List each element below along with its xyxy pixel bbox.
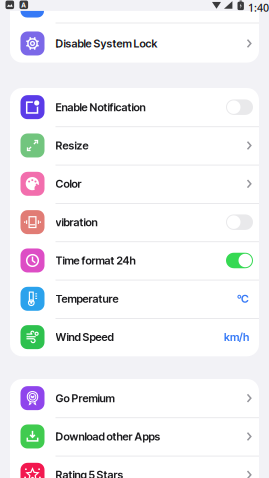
button[interactable]: Download other Apps: [10, 417, 259, 456]
staticText: km/h: [224, 330, 249, 344]
staticText: Download other Apps: [55, 430, 160, 443]
button[interactable]: Disable System Lock: [10, 24, 259, 63]
button[interactable]: vibration: [10, 203, 259, 241]
staticText: Enable Notification: [55, 101, 145, 114]
button[interactable]: Go Premium: [10, 379, 259, 417]
button[interactable]: Time format 24h: [10, 241, 259, 280]
staticText: Rating 5 Stars: [55, 468, 123, 478]
staticText: 1:40: [248, 0, 269, 15]
button[interactable]: Wind Speed: [10, 318, 259, 356]
button[interactable]: Resize: [10, 126, 259, 165]
staticText: Time format 24h: [55, 254, 135, 267]
staticText: Color: [55, 177, 81, 190]
button[interactable]: Temperature: [10, 280, 259, 318]
staticText: Disable System Lock: [55, 37, 157, 50]
button[interactable]: Color: [10, 165, 259, 203]
button[interactable]: Enable Notification: [10, 88, 259, 126]
staticText: A: [21, 0, 26, 9]
staticText: Go Premium: [55, 392, 114, 405]
staticText: Resize: [55, 139, 88, 152]
staticText: Wind Speed: [55, 330, 113, 344]
button[interactable]: Rating 5 Stars: [10, 456, 259, 478]
staticText: vibration: [55, 215, 97, 229]
staticText: Temperature: [55, 292, 118, 305]
staticText: °C: [237, 292, 249, 305]
